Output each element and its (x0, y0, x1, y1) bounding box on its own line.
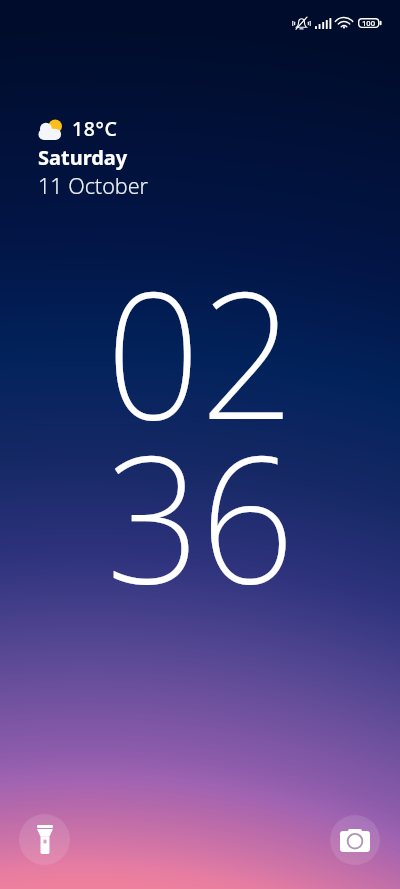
staticText: Saturday (38, 144, 128, 171)
button[interactable]: 18°C (36, 113, 151, 202)
button[interactable]: Camera (330, 815, 380, 865)
staticText: 18°C (72, 115, 118, 142)
staticText: 100 (362, 18, 376, 28)
staticText: 02 (106, 231, 295, 471)
staticText: 36 (106, 395, 295, 635)
staticText: 11 October (38, 171, 149, 200)
button[interactable]: Flashlight (19, 814, 70, 865)
